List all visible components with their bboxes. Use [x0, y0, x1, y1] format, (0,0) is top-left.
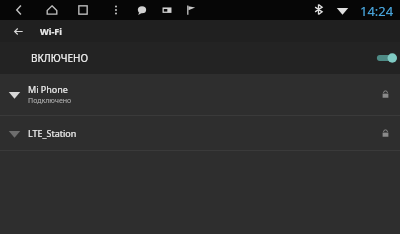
button[interactable]: Gallery — [159, 2, 175, 18]
staticText: ВКЛЮЧЕНО — [31, 51, 89, 65]
button[interactable]: Back — [11, 2, 27, 18]
button[interactable]: Home — [44, 2, 60, 18]
button[interactable]: Mi Phone — [0, 74, 400, 115]
staticText: 14:24 — [360, 2, 394, 20]
button[interactable]: Menu — [108, 2, 124, 18]
staticText: LTE_Station — [28, 127, 77, 139]
button[interactable]: ВКЛЮЧЕНО — [0, 42, 400, 74]
other: Wi-Fi signal — [336, 4, 349, 17]
button[interactable]: Navigation — [183, 2, 199, 18]
button[interactable]: Recent apps — [75, 2, 91, 18]
button[interactable]: Messages — [134, 2, 150, 18]
other: Bluetooth — [312, 3, 325, 16]
other: Wi-Fi on — [376, 51, 398, 65]
staticText: Mi Phone — [28, 83, 68, 95]
staticText: Подключено — [28, 96, 72, 106]
button[interactable]: Navigate up — [11, 24, 26, 39]
staticText: Wi-Fi — [40, 25, 62, 37]
button[interactable]: LTE_Station — [0, 116, 400, 150]
